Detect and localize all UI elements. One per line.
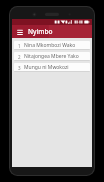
button[interactable]: 1 xyxy=(14,41,90,50)
button[interactable]: 2 xyxy=(14,52,90,61)
button[interactable]: Open navigation drawer xyxy=(15,27,25,37)
staticText: Nyimbo xyxy=(28,27,53,36)
staticText: 1 xyxy=(18,43,21,49)
staticText: 3 xyxy=(18,65,21,71)
staticText: 2 xyxy=(18,54,21,60)
button[interactable]: 3 xyxy=(14,63,90,72)
staticText: Nitajongea Mbere Yako xyxy=(24,53,79,60)
staticText: Nina Mkombozi Wako xyxy=(24,42,76,49)
staticText: Mungu ni Mwokozi xyxy=(24,64,69,71)
